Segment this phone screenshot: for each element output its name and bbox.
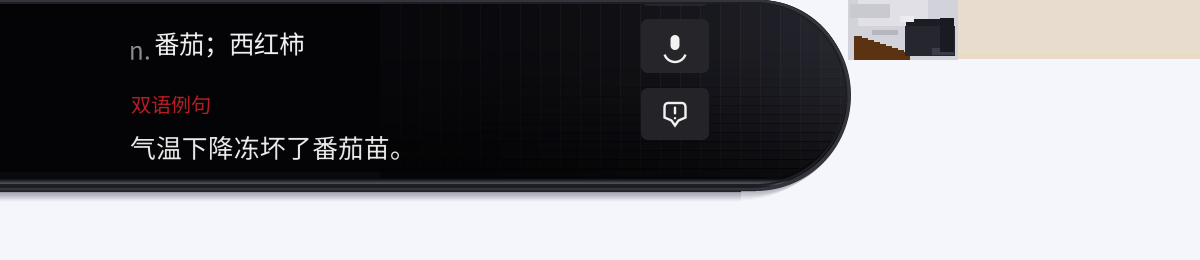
staticText: n.: [129, 32, 151, 67]
button[interactable]: Report a problem: [641, 88, 709, 140]
button[interactable]: Pronounce: [641, 19, 709, 73]
staticText: 双语例句: [131, 89, 211, 118]
button[interactable]: Add to favourites: [641, 0, 709, 6]
staticText: 番茄；西红柿: [154, 24, 304, 61]
staticText: 气温下降冻坏了番茄苗。: [130, 128, 416, 165]
